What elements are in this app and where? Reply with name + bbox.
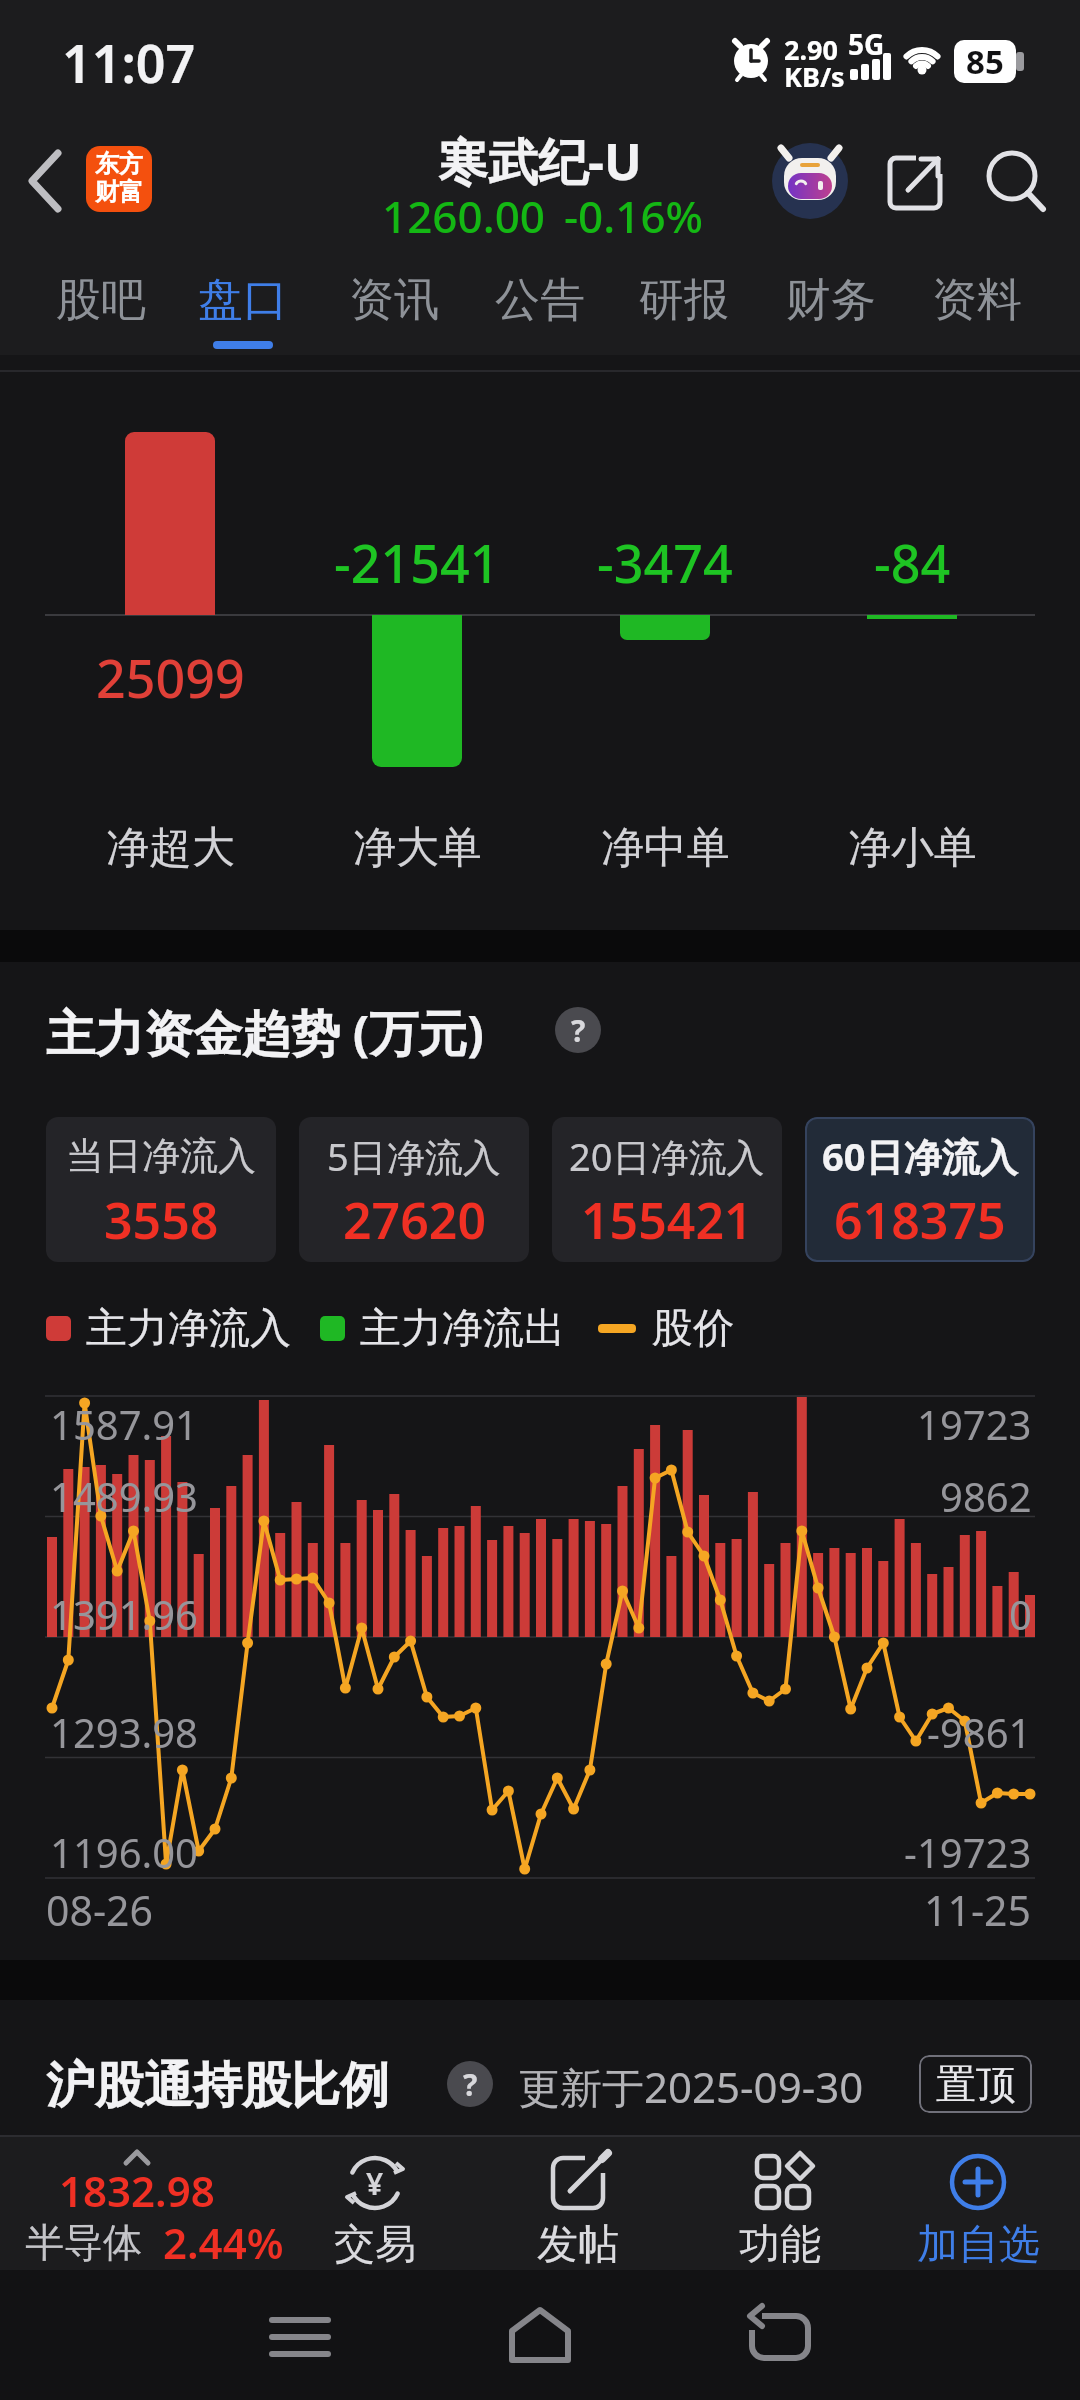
staticText: 2.44% (163, 2214, 284, 2271)
staticText: 更新于2025-09-30 (518, 2058, 864, 2115)
button[interactable] (15, 2135, 270, 2270)
button[interactable] (86, 146, 152, 212)
staticText: 60日净流入 (822, 1130, 1018, 1182)
button[interactable] (805, 1117, 1035, 1262)
staticText: 2.90 (784, 31, 838, 68)
staticText: -0.16% (564, 186, 704, 246)
staticText: 功能 (739, 2219, 821, 2271)
staticText: 25099 (96, 642, 245, 713)
staticText: ? (571, 1010, 586, 1051)
button[interactable]: 公告 (470, 248, 610, 353)
staticText: 交易 (334, 2219, 416, 2271)
staticText: 5日净流入 (327, 1130, 501, 1182)
button[interactable]: 研报 (614, 248, 754, 353)
staticText: KB/s (784, 58, 845, 95)
staticText: 5G (848, 25, 885, 63)
staticText: 1489.93 (50, 1469, 198, 1523)
staticText: 置顶 (936, 2059, 1016, 2109)
staticText: 资讯 (349, 272, 439, 329)
staticText: 财务 (786, 272, 876, 329)
staticText: 9862 (940, 1469, 1032, 1523)
staticText: 资料 (932, 272, 1022, 329)
staticText: 净中单 (601, 821, 730, 875)
button[interactable] (710, 2290, 850, 2385)
staticText: ? (463, 2064, 478, 2105)
button[interactable]: 财务 (761, 248, 901, 353)
staticText: -3474 (597, 527, 733, 598)
button[interactable] (680, 2135, 880, 2270)
staticText: 研报 (639, 272, 729, 329)
button[interactable] (230, 2290, 370, 2385)
staticText: 股价 (652, 1303, 734, 1355)
staticText: -9861 (927, 1705, 1032, 1759)
staticText: 85 (966, 39, 1004, 84)
staticText: 618375 (834, 1186, 1006, 1254)
staticText: -84 (874, 527, 951, 598)
staticText: 东方 (95, 149, 143, 179)
staticText: 1260.00 (382, 186, 545, 246)
staticText: 155421 (581, 1186, 753, 1254)
button[interactable]: 盘口 (173, 248, 313, 353)
staticText: 财富 (95, 177, 143, 207)
button[interactable]: 资讯 (324, 248, 464, 353)
staticText: 加自选 (917, 2219, 1040, 2271)
staticText: 净超大 (106, 821, 235, 875)
staticText: 沪股通持股比例 (46, 2055, 389, 2117)
button[interactable] (478, 2135, 678, 2270)
staticText: 1832.98 (59, 2162, 215, 2219)
staticText: 1587.91 (50, 1397, 198, 1451)
staticText: 1391.96 (50, 1587, 198, 1641)
staticText: 净大单 (353, 821, 482, 875)
staticText: ¥ (366, 2163, 384, 2204)
button[interactable]: 股吧 (31, 248, 171, 353)
staticText: 当日净流入 (66, 1132, 256, 1180)
staticText: 股吧 (56, 272, 146, 329)
button[interactable]: 资料 (907, 248, 1047, 353)
button[interactable] (552, 1117, 782, 1262)
button[interactable] (470, 2290, 610, 2385)
staticText: 寒武纪-U (438, 127, 642, 195)
staticText: 发帖 (537, 2219, 619, 2271)
button[interactable] (880, 146, 950, 216)
button[interactable]: ¥ (275, 2135, 475, 2270)
staticText: -19723 (904, 1825, 1032, 1879)
staticText: 20日净流入 (569, 1130, 765, 1182)
staticText: 11:07 (62, 27, 196, 98)
staticText: 主力净流入 (86, 1303, 291, 1355)
button[interactable] (46, 1117, 276, 1262)
staticText: 0 (1009, 1587, 1032, 1641)
staticText: 主力资金趋势 (万元) (46, 999, 484, 1066)
staticText: -21541 (334, 527, 500, 598)
staticText: 盘口 (198, 272, 288, 329)
staticText: 公告 (495, 272, 585, 329)
button[interactable] (878, 2135, 1078, 2270)
button[interactable] (980, 146, 1050, 216)
staticText: 净小单 (848, 821, 977, 875)
staticText: 半导体 (25, 2218, 142, 2267)
staticText: 3558 (104, 1186, 219, 1254)
button[interactable] (299, 1117, 529, 1262)
button[interactable] (16, 145, 80, 220)
staticText: 27620 (343, 1186, 486, 1254)
button[interactable]: 置顶 (919, 2055, 1032, 2113)
staticText: 19723 (917, 1397, 1032, 1451)
staticText: 主力净流出 (360, 1303, 565, 1355)
button[interactable] (772, 143, 848, 219)
staticText: 1293.98 (50, 1705, 198, 1759)
staticText: 08-26 (46, 1882, 154, 1938)
staticText: 1196.00 (50, 1825, 198, 1879)
staticText: 11-25 (924, 1882, 1032, 1938)
